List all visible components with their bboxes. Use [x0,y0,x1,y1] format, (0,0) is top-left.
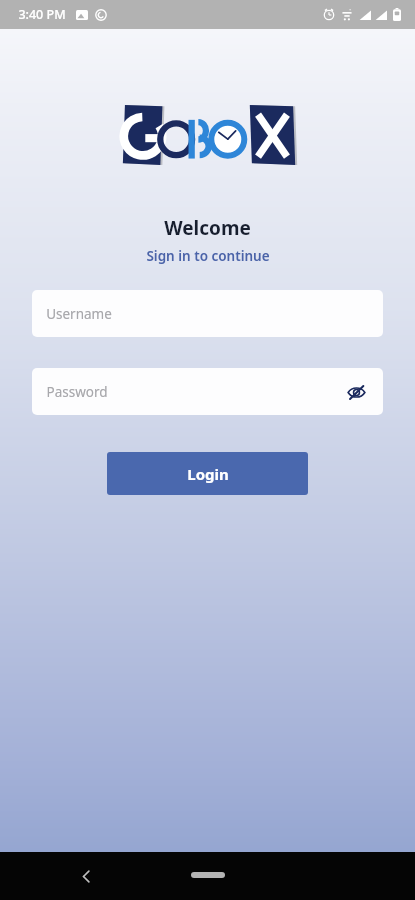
staticText: Login [187,464,229,484]
button[interactable]: Home [191,872,225,878]
staticText: Password [46,383,108,401]
button[interactable]: Show password [339,375,373,409]
staticText: Sign in to continue [146,247,270,265]
button[interactable]: Login [107,452,308,495]
staticText: Welcome [164,215,251,241]
staticText: Username [46,305,112,323]
staticText: 3:40 PM [18,6,66,23]
button[interactable]: Password [32,368,383,415]
button[interactable]: Username [32,290,383,337]
button[interactable]: Back [66,856,106,896]
